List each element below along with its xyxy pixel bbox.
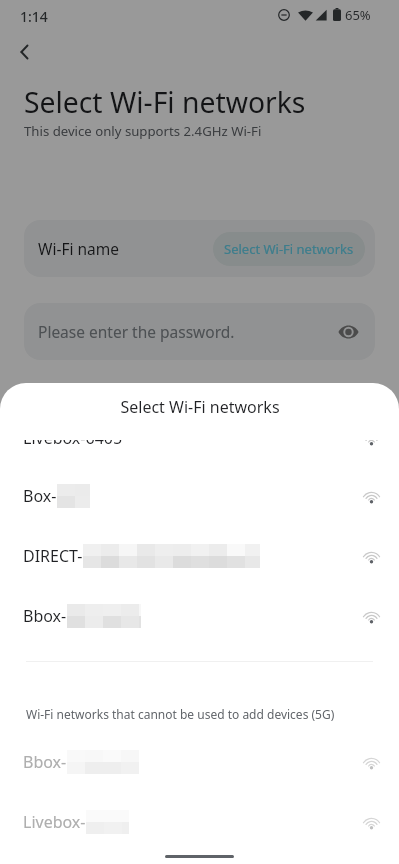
staticText: 65% bbox=[345, 6, 371, 24]
button[interactable]: Show password bbox=[331, 315, 365, 349]
staticText: Bbox- bbox=[23, 605, 67, 627]
button[interactable]: Please enter the password. bbox=[24, 303, 375, 360]
button[interactable]: Select Wi-Fi networks bbox=[213, 232, 365, 266]
staticText: This device only supports 2.4GHz Wi-Fi bbox=[24, 122, 262, 140]
staticText: 1:14 bbox=[20, 7, 48, 26]
staticText: DIRECT- bbox=[23, 545, 83, 567]
button[interactable]: Wi-Fi name bbox=[24, 220, 375, 277]
staticText: Please enter the password. bbox=[38, 321, 235, 342]
staticText: Bbox- bbox=[23, 751, 67, 773]
staticText: Select Wi-Fi networks bbox=[120, 396, 280, 418]
staticText: Box- bbox=[23, 485, 57, 507]
staticText: Wi-Fi networks that cannot be used to ad… bbox=[26, 706, 335, 722]
button[interactable]: Back bbox=[8, 35, 42, 69]
staticText: Select Wi-Fi networks bbox=[224, 240, 354, 258]
staticText: Wi-Fi name bbox=[38, 238, 119, 259]
button[interactable]: Livebox- bbox=[0, 792, 399, 852]
button[interactable]: Bbox- bbox=[0, 732, 399, 792]
button[interactable]: Livebox-6405 bbox=[0, 440, 399, 466]
button[interactable]: Bbox- bbox=[0, 586, 399, 646]
button[interactable]: DIRECT- bbox=[0, 526, 399, 586]
button[interactable]: Box- bbox=[0, 466, 399, 526]
staticText: Select Wi-Fi networks bbox=[24, 83, 306, 122]
staticText: Livebox-6405 bbox=[23, 440, 123, 449]
staticText: Livebox- bbox=[23, 811, 86, 833]
